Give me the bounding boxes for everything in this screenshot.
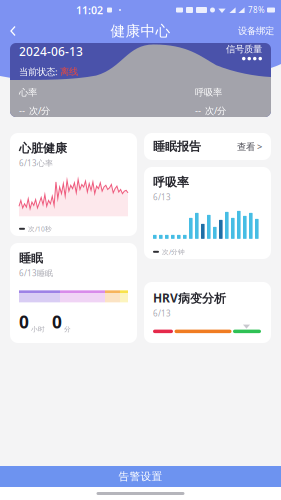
staticText: -- 次/分 <box>195 104 226 117</box>
staticText: 当前状态: <box>19 65 60 78</box>
staticText: -- 次/分 <box>19 104 50 117</box>
button[interactable]: 告警设置 <box>0 466 281 487</box>
staticText: 呼吸率 <box>153 175 189 190</box>
staticText: 6/13 <box>153 308 171 319</box>
staticText: 睡眠报告 <box>153 139 201 154</box>
button[interactable]: 睡眠报告 <box>144 133 271 160</box>
staticText: 健康中心 <box>110 22 170 40</box>
staticText: 查看 > <box>237 140 262 153</box>
staticText: 睡眠 <box>19 251 43 266</box>
staticText: 78% <box>248 5 265 15</box>
staticText: 设备绑定 <box>238 25 274 37</box>
staticText: 2024-06-13 <box>19 43 83 59</box>
staticText: 次/10秒 <box>28 224 52 233</box>
staticText: 6/13 <box>153 192 171 202</box>
button[interactable]: 设备绑定 <box>231 21 281 41</box>
staticText: 小时 <box>29 325 45 333</box>
staticText: 0 <box>52 310 62 333</box>
staticText: 告警设置 <box>118 470 162 483</box>
staticText: 心脏健康 <box>19 141 67 156</box>
staticText: HRV病变分析 <box>153 290 226 306</box>
staticText: 11:02 <box>76 3 103 17</box>
staticText: 6/13睡眠 <box>19 268 53 278</box>
button[interactable]: Back <box>0 21 26 41</box>
staticText: 信号质量 <box>226 43 262 55</box>
staticText: 心率 <box>19 87 37 98</box>
staticText: 6/13心率 <box>19 158 53 168</box>
staticText: 呼吸率 <box>195 87 222 98</box>
staticText: 0 <box>19 310 29 333</box>
staticText: 次/分钟 <box>162 247 185 256</box>
staticText: 分 <box>62 325 71 333</box>
staticText: 离线 <box>60 66 78 77</box>
